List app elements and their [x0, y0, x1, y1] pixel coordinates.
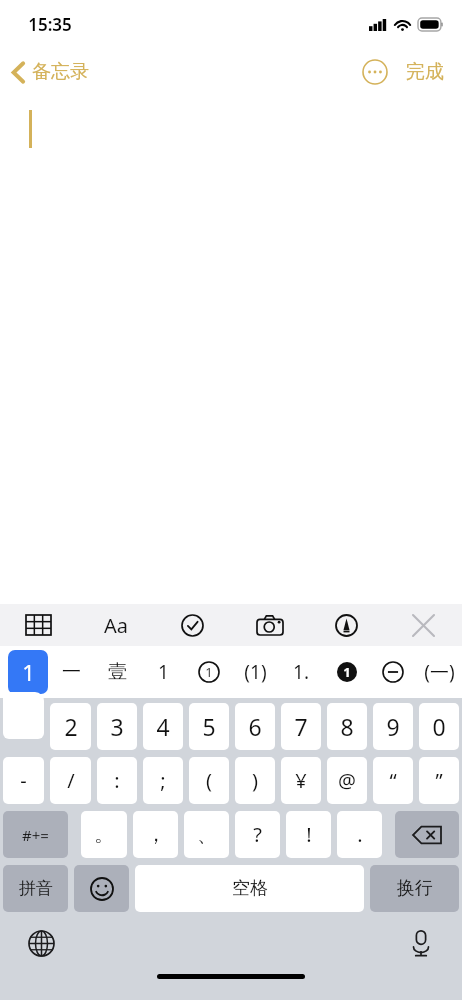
button[interactable]: ): [235, 757, 275, 804]
button[interactable]: (一): [416, 646, 462, 698]
staticText: ¥: [295, 767, 307, 794]
staticText: ，: [146, 822, 166, 847]
button[interactable]: Dictation: [402, 924, 440, 962]
button[interactable]: (1): [232, 646, 278, 698]
staticText: ”: [435, 767, 443, 794]
button[interactable]: 7: [281, 703, 321, 750]
staticText: 9: [386, 711, 400, 742]
button[interactable]: 一: [48, 646, 94, 698]
staticText: 1.: [293, 659, 309, 685]
button[interactable]: ;: [143, 757, 183, 804]
staticText: Aa: [104, 612, 128, 639]
staticText: !: [306, 821, 312, 848]
button[interactable]: 3: [97, 703, 137, 750]
button[interactable]: Switch keyboard: [22, 924, 60, 962]
staticText: 壹: [108, 660, 127, 684]
staticText: @: [338, 767, 356, 794]
staticText: 2: [64, 711, 78, 742]
staticText: 3: [110, 711, 124, 742]
button[interactable]: 备忘录: [0, 54, 99, 90]
button[interactable]: ¥: [281, 757, 321, 804]
button[interactable]: ”: [419, 757, 459, 804]
staticText: ): [252, 767, 258, 794]
button[interactable]: 9: [373, 703, 413, 750]
button[interactable]: 1: [324, 646, 370, 698]
staticText: “: [389, 767, 397, 794]
button[interactable]: Emoji: [74, 865, 129, 912]
button[interactable]: :: [97, 757, 137, 804]
button[interactable]: ，: [133, 811, 178, 858]
staticText: .: [357, 821, 363, 848]
button[interactable]: ?: [235, 811, 280, 858]
button[interactable]: Checklist: [154, 604, 231, 646]
button[interactable]: 1: [186, 646, 232, 698]
staticText: 1: [158, 659, 169, 685]
button[interactable]: 1: [140, 646, 186, 698]
staticText: 1: [22, 657, 35, 687]
button[interactable]: 、: [184, 811, 229, 858]
staticText: (一): [424, 659, 455, 685]
button[interactable]: 2: [50, 703, 91, 750]
button[interactable]: 4: [143, 703, 183, 750]
button[interactable]: 拼音: [3, 865, 68, 912]
staticText: 拼音: [19, 878, 53, 899]
button[interactable]: Text format: [77, 604, 154, 646]
staticText: 完成: [406, 60, 444, 84]
button[interactable]: #+=: [3, 811, 68, 858]
button[interactable]: 换行: [370, 865, 459, 912]
button[interactable]: 1.: [278, 646, 324, 698]
staticText: 8: [340, 711, 354, 742]
button[interactable]: 空格: [135, 865, 364, 912]
button[interactable]: .: [337, 811, 382, 858]
staticText: #+=: [22, 825, 49, 845]
button[interactable]: 。: [81, 811, 127, 858]
staticText: /: [67, 767, 75, 794]
button[interactable]: “: [373, 757, 413, 804]
staticText: 空格: [232, 877, 268, 900]
staticText: ;: [160, 767, 166, 794]
button[interactable]: Table: [0, 604, 77, 646]
button[interactable]: Backspace: [395, 811, 459, 858]
staticText: (1): [244, 659, 267, 685]
button[interactable]: @: [327, 757, 367, 804]
staticText: 5: [202, 711, 216, 742]
staticText: 6: [248, 711, 262, 742]
button[interactable]: -: [3, 757, 44, 804]
button[interactable]: 1: [8, 650, 48, 694]
staticText: 7: [294, 711, 308, 742]
button[interactable]: /: [50, 757, 91, 804]
staticText: -: [20, 767, 27, 794]
staticText: 一: [62, 660, 81, 684]
button[interactable]: More options: [358, 55, 392, 89]
button[interactable]: [3, 692, 44, 739]
staticText: 备忘录: [32, 60, 89, 84]
button[interactable]: 壹: [94, 646, 140, 698]
staticText: 0: [432, 711, 446, 742]
button[interactable]: 6: [235, 703, 275, 750]
button[interactable]: 5: [189, 703, 229, 750]
staticText: 1: [205, 663, 213, 681]
button[interactable]: [370, 646, 416, 698]
staticText: 15:35: [28, 13, 72, 36]
staticText: :: [114, 767, 120, 794]
staticText: 换行: [397, 877, 433, 900]
staticText: 4: [156, 711, 170, 742]
staticText: 。: [94, 822, 114, 847]
button[interactable]: 0: [419, 703, 459, 750]
staticText: (: [206, 767, 212, 794]
button[interactable]: Close keyboard: [385, 604, 462, 646]
button[interactable]: !: [286, 811, 331, 858]
staticText: 1: [343, 663, 351, 681]
staticText: ?: [253, 821, 262, 848]
button[interactable]: (: [189, 757, 229, 804]
button[interactable]: Camera: [231, 604, 308, 646]
button[interactable]: 完成: [402, 54, 448, 90]
button[interactable]: 8: [327, 703, 367, 750]
staticText: 、: [197, 822, 217, 847]
button[interactable]: Markup: [308, 604, 385, 646]
